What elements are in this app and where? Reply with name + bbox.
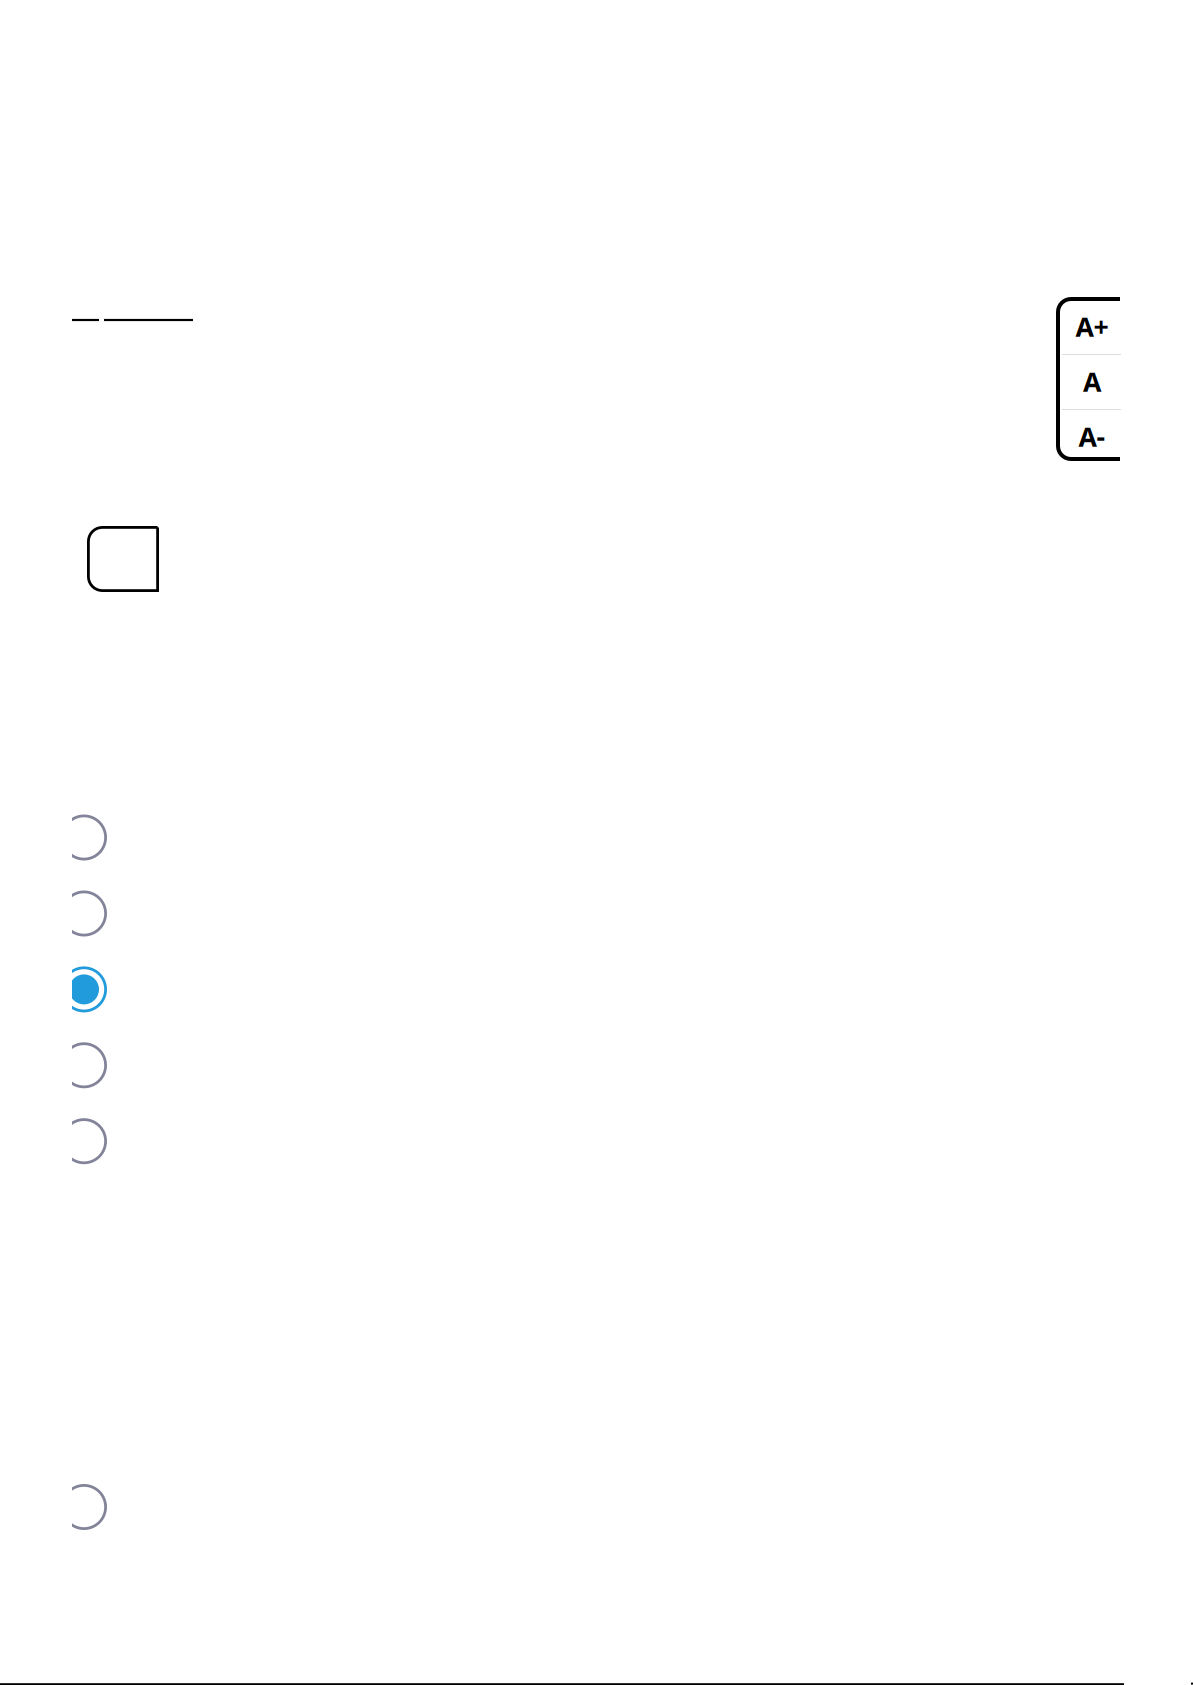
button[interactable]: Agree to the terms bbox=[87, 526, 159, 592]
button[interactable]: Option 3 bbox=[61, 966, 107, 1012]
button[interactable]: Option 5 bbox=[61, 1118, 107, 1164]
button[interactable]: Option 6 bbox=[61, 1484, 107, 1530]
button[interactable]: Increase text size bbox=[1064, 299, 1120, 353]
staticText: A- bbox=[1078, 419, 1105, 454]
staticText: A bbox=[1083, 364, 1101, 399]
staticText: A+ bbox=[1075, 309, 1108, 344]
button[interactable]: Decrease text size bbox=[1064, 409, 1120, 463]
button[interactable]: Option 4 bbox=[61, 1042, 107, 1088]
button[interactable]: Reset text size bbox=[1064, 354, 1120, 408]
button[interactable]: Option 1 bbox=[61, 814, 107, 860]
button[interactable]: Option 2 bbox=[61, 890, 107, 936]
